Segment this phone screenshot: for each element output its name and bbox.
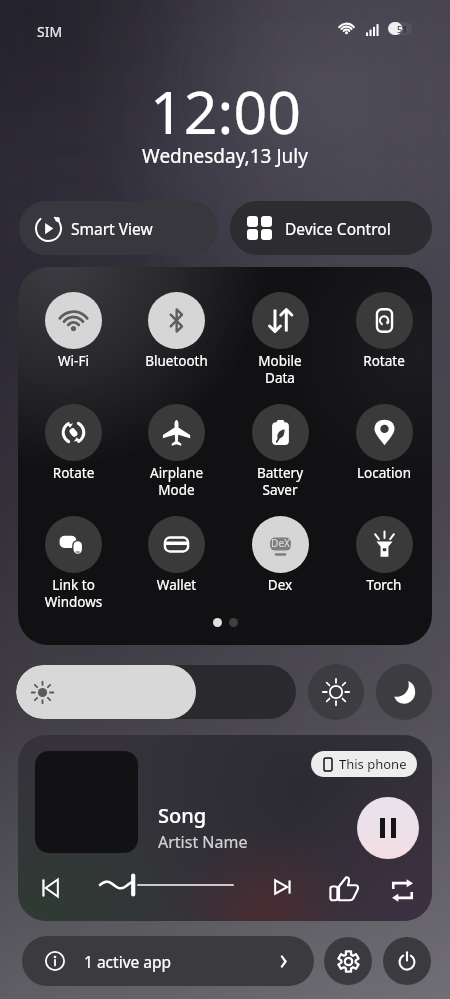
staticText: Wi-Fi xyxy=(22,352,125,370)
button[interactable]: Like xyxy=(330,876,358,901)
staticText: Wednesday,13 July xyxy=(142,143,308,169)
staticText: Mobile Data xyxy=(228,352,332,387)
button[interactable]: Link to Windows xyxy=(22,516,125,616)
staticText: 1 active app xyxy=(84,951,172,972)
staticText: Artist Name xyxy=(158,831,248,853)
button[interactable]: Bluetooth xyxy=(125,292,228,404)
button[interactable]: Torch xyxy=(332,516,432,616)
staticText: Dex xyxy=(228,576,332,594)
staticText: Link to Windows xyxy=(22,576,125,611)
button[interactable]: Battery Saver xyxy=(228,404,332,516)
button[interactable]: Rotate xyxy=(22,404,125,516)
button[interactable]: Device Control xyxy=(230,201,432,255)
staticText: Device Control xyxy=(285,218,391,239)
button[interactable]: Power xyxy=(383,937,431,985)
button[interactable]: DeX xyxy=(228,516,332,616)
button[interactable]: 1 active app xyxy=(22,936,314,986)
button[interactable]: Brightness xyxy=(16,665,296,719)
staticText: Torch xyxy=(332,576,432,594)
staticText: Location xyxy=(332,464,432,482)
button[interactable]: Dark mode xyxy=(376,664,432,720)
staticText: DeX xyxy=(266,536,295,550)
staticText: 12:00 xyxy=(150,71,301,151)
button[interactable]: Next xyxy=(275,880,291,894)
button[interactable]: Settings xyxy=(324,937,372,985)
staticText: This phone xyxy=(339,755,407,773)
button[interactable]: Mobile Data xyxy=(228,292,332,404)
button[interactable]: Rotate xyxy=(332,292,432,404)
button[interactable]: Wallet xyxy=(125,516,228,616)
button[interactable]: Auto brightness xyxy=(308,664,364,720)
staticText: Smart View xyxy=(71,218,153,239)
staticText: Bluetooth xyxy=(125,352,228,370)
staticText: Song xyxy=(158,802,207,829)
button[interactable]: Repeat xyxy=(392,879,413,902)
button[interactable]: This phone xyxy=(311,751,417,777)
staticText: Rotate xyxy=(332,352,432,370)
button[interactable]: Wi-Fi xyxy=(22,292,125,404)
staticText: 51 xyxy=(397,23,408,35)
button[interactable]: Pause xyxy=(357,797,419,859)
button[interactable]: Airplane Mode xyxy=(125,404,228,516)
button[interactable]: Previous xyxy=(42,879,58,897)
button[interactable]: Location xyxy=(332,404,432,516)
button[interactable]: Smart View xyxy=(19,201,218,255)
staticText: Rotate xyxy=(22,464,125,482)
staticText: Airplane Mode xyxy=(125,464,228,499)
staticText: SIM xyxy=(37,22,63,41)
staticText: Battery Saver xyxy=(228,464,332,499)
staticText: Wallet xyxy=(125,576,228,594)
